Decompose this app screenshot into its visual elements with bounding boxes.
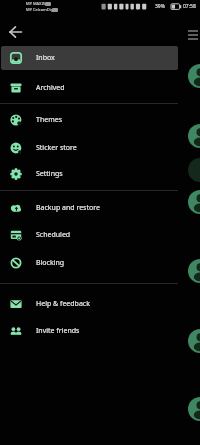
- staticText: Blocking: [36, 258, 65, 268]
- staticText: Sticker store: [36, 143, 77, 153]
- staticText: Help & feedback: [36, 299, 90, 309]
- button[interactable]: Backup and restore: [1, 196, 178, 220]
- button[interactable]: [186, 27, 200, 42]
- button[interactable]: Sticker store: [1, 136, 178, 160]
- button[interactable]: Archived: [1, 76, 178, 100]
- button[interactable]: Help & feedback: [1, 292, 178, 316]
- staticText: Archived: [36, 83, 65, 93]
- staticText: Backup and restore: [36, 203, 100, 213]
- staticText: MY MAXIS: [26, 1, 46, 6]
- button[interactable]: Scheduled: [1, 223, 178, 247]
- button[interactable]: Themes: [1, 108, 178, 132]
- button[interactable]: [8, 25, 24, 39]
- button[interactable]: Invite friends: [1, 319, 178, 343]
- staticText: Themes: [36, 115, 63, 125]
- staticText: MY CelcomDigi...: [26, 7, 58, 12]
- staticText: Settings: [36, 169, 63, 179]
- staticText: 39%: [155, 3, 165, 10]
- staticText: Scheduled: [36, 230, 71, 240]
- button[interactable]: Inbox: [1, 46, 178, 70]
- button[interactable]: Blocking: [1, 251, 178, 275]
- button[interactable]: Settings: [1, 162, 178, 186]
- staticText: 07:58: [183, 3, 196, 10]
- staticText: Inbox: [36, 53, 55, 63]
- staticText: Invite friends: [36, 326, 80, 336]
